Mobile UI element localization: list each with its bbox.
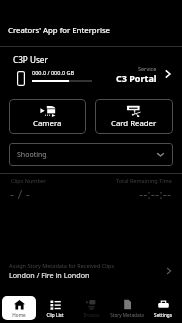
staticText: Settings [154, 312, 172, 318]
staticText: Card Reader [111, 118, 157, 129]
staticText: Assign Story Metadata for Received Clips [9, 262, 115, 269]
button[interactable]: Story Metadata [110, 296, 144, 320]
staticText: Browse [83, 312, 100, 318]
button[interactable]: Shooting [9, 143, 173, 166]
staticText: --:--:-- [139, 185, 172, 203]
staticText: Camera [33, 118, 62, 129]
staticText: Clip List [46, 312, 64, 318]
staticText: Story Metadata [110, 312, 144, 318]
staticText: - / - [10, 185, 30, 203]
staticText: C3 Portal [116, 72, 157, 84]
staticText: Creators' App for Enterprise [8, 25, 111, 36]
button[interactable]: Service [96, 60, 178, 88]
button[interactable]: Clip List [38, 296, 72, 320]
button[interactable]: Browse [74, 296, 108, 320]
staticText: Shooting [17, 150, 47, 160]
staticText: C3P User [13, 54, 48, 65]
button[interactable]: Assign Story Metadata for Received Clips [0, 257, 182, 285]
button[interactable]: Card Reader [95, 99, 173, 134]
staticText: 000.0 / 000.0 GB [32, 69, 75, 76]
staticText: Service [138, 65, 157, 72]
staticText: Total Remaining Time [116, 177, 172, 184]
staticText: Home [12, 312, 26, 318]
staticText: London / Fire in London [9, 270, 90, 280]
button[interactable]: Camera [9, 99, 86, 134]
staticText: Clips Number [11, 177, 47, 184]
button[interactable]: Settings [146, 296, 180, 320]
button[interactable]: Home [2, 296, 36, 320]
